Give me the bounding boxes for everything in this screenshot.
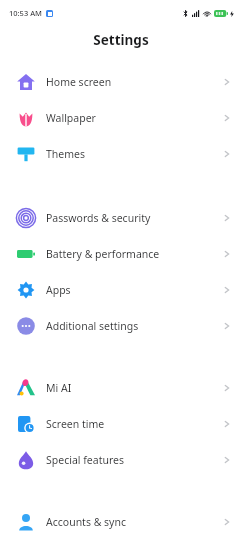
staticText: Settings	[93, 31, 149, 49]
button[interactable]: Battery & performance	[0, 236, 242, 272]
button[interactable]: Apps	[0, 272, 242, 308]
button[interactable]: Additional settings	[0, 308, 242, 344]
button[interactable]: Home screen	[0, 64, 242, 100]
button[interactable]: Special features	[0, 442, 242, 478]
button[interactable]: Accounts & sync	[0, 506, 242, 538]
staticText: Mi AI	[46, 381, 72, 395]
staticText: 10:53 AM	[9, 8, 42, 18]
staticText: Themes	[46, 147, 86, 161]
button[interactable]: Themes	[0, 136, 242, 172]
staticText: Screen time	[46, 417, 105, 431]
button[interactable]: Mi AI	[0, 370, 242, 406]
button[interactable]: Passwords & security	[0, 200, 242, 236]
staticText: Special features	[46, 453, 125, 467]
staticText: Accounts & sync	[46, 515, 126, 529]
staticText: Passwords & security	[46, 211, 151, 225]
staticText: Battery & performance	[46, 247, 160, 261]
staticText: Additional settings	[46, 319, 139, 333]
button[interactable]: Screen time	[0, 406, 242, 442]
staticText: Home screen	[46, 75, 112, 89]
staticText: Apps	[46, 283, 71, 297]
staticText: Wallpaper	[46, 111, 96, 125]
button[interactable]: Wallpaper	[0, 100, 242, 136]
